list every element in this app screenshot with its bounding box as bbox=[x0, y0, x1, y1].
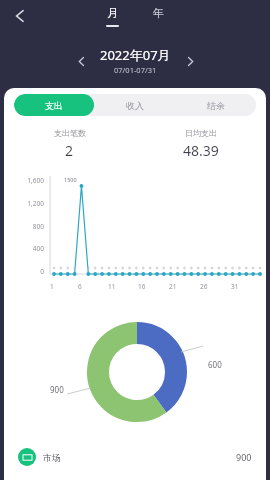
staticText: 26 bbox=[200, 282, 208, 291]
staticText: 结余 bbox=[207, 100, 225, 111]
staticText: 31 bbox=[231, 282, 239, 291]
staticText: 支出 bbox=[45, 100, 63, 111]
staticText: 市场 bbox=[43, 452, 61, 463]
staticText: 400 bbox=[32, 244, 44, 253]
staticText: 年 bbox=[153, 6, 164, 20]
staticText: 1500 bbox=[64, 176, 77, 183]
staticText: 1,600 bbox=[27, 176, 44, 185]
button[interactable]: Back bbox=[6, 2, 34, 30]
staticText: 800 bbox=[32, 222, 44, 231]
button[interactable]: 年 bbox=[147, 4, 170, 27]
staticText: 日均支出 bbox=[185, 128, 217, 138]
staticText: 收入 bbox=[126, 100, 144, 111]
staticText: 支出笔数 bbox=[54, 128, 86, 138]
staticText: 6 bbox=[78, 282, 82, 291]
staticText: 07/01-07/31 bbox=[114, 65, 157, 75]
button[interactable]: Previous month bbox=[70, 50, 92, 72]
staticText: 48.39 bbox=[183, 141, 219, 160]
staticText: 2 bbox=[65, 141, 74, 160]
button[interactable]: 月 bbox=[100, 4, 125, 29]
staticText: 600 bbox=[208, 359, 222, 370]
button[interactable]: 结余 bbox=[175, 94, 256, 116]
staticText: 11 bbox=[108, 282, 116, 291]
staticText: 1 bbox=[50, 282, 54, 291]
staticText: 1,200 bbox=[27, 199, 44, 208]
staticText: 21 bbox=[169, 282, 177, 291]
button[interactable]: 市场 bbox=[4, 440, 266, 474]
button[interactable]: Next month bbox=[179, 50, 201, 72]
staticText: 900 bbox=[236, 451, 252, 463]
staticText: 0 bbox=[40, 267, 44, 276]
staticText: 月 bbox=[107, 6, 118, 20]
staticText: 2022年07月 bbox=[100, 46, 171, 64]
button[interactable]: 支出 bbox=[14, 94, 94, 116]
staticText: 16 bbox=[138, 282, 146, 291]
staticText: 900 bbox=[50, 384, 64, 395]
button[interactable]: 收入 bbox=[94, 94, 175, 116]
